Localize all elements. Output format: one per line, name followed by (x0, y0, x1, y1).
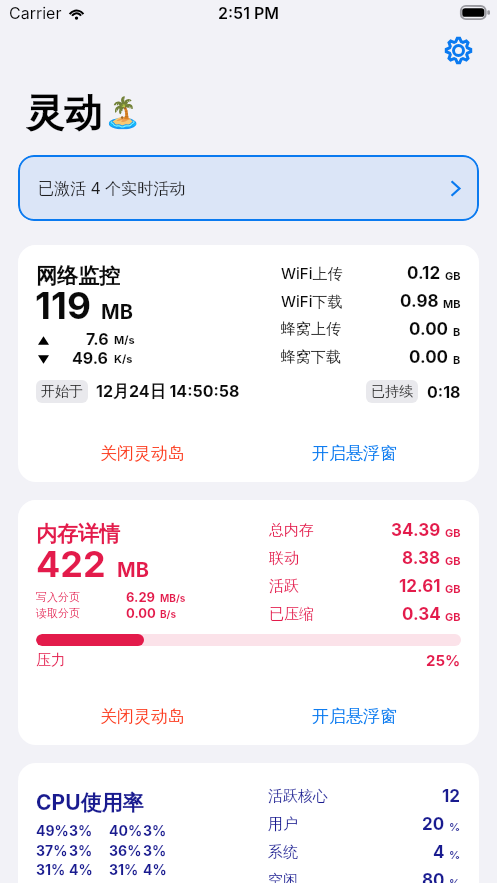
button[interactable]: 关闭灵动岛 (36, 687, 248, 745)
staticText: B (453, 353, 461, 366)
staticText: 3% (143, 842, 167, 859)
staticText: 🏝 (104, 95, 142, 130)
staticText: 已压缩 (269, 605, 314, 624)
staticText: 0:18 (427, 382, 461, 401)
staticText: 12 (442, 786, 461, 807)
staticText: B/s (160, 608, 177, 620)
staticText: 3% (69, 822, 93, 839)
staticText: 8.38 (402, 548, 441, 569)
staticText: 49% (36, 822, 69, 839)
staticText: 开始于 (41, 383, 83, 401)
staticText: 联动 (269, 549, 299, 568)
staticText: 0.12 (407, 263, 441, 284)
staticText: 31% (109, 861, 139, 878)
staticText: 蜂窝上传 (281, 320, 341, 339)
staticText: GB (445, 554, 461, 567)
staticText: MB (443, 297, 461, 310)
staticText: 31% (36, 861, 66, 878)
staticText: WiFi下载 (281, 292, 343, 311)
staticText: % (449, 820, 461, 833)
staticText: 4% (143, 861, 167, 878)
staticText: GB (445, 269, 461, 282)
staticText: 6.29 (126, 589, 156, 605)
staticText: GB (445, 526, 461, 539)
staticText: 3% (69, 842, 93, 859)
staticText: 写入分页 (36, 590, 80, 604)
staticText: 49.6 (72, 348, 109, 367)
button[interactable]: Settings (441, 33, 475, 67)
staticText: 开启悬浮窗 (312, 443, 397, 464)
button[interactable]: 开启悬浮窗 (248, 424, 461, 482)
staticText: GB (445, 610, 461, 623)
staticText: 0.00 (409, 319, 449, 340)
staticText: 蜂窝下载 (281, 348, 341, 367)
staticText: K/s (114, 352, 133, 365)
staticText: 80 (422, 870, 445, 883)
staticText: 4% (69, 861, 93, 878)
button[interactable]: 开启悬浮窗 (248, 687, 461, 745)
staticText: 119 (35, 283, 91, 328)
staticText: 读取分页 (36, 606, 80, 620)
staticText: 灵动 (26, 89, 102, 135)
staticText: 总内存 (269, 521, 314, 540)
staticText: 开启悬浮窗 (312, 706, 397, 727)
staticText: MB (117, 558, 149, 582)
staticText: 7.6 (86, 329, 109, 348)
staticText: 36% (109, 842, 142, 859)
staticText: 已持续 (371, 383, 413, 401)
staticText: 系统 (268, 843, 298, 862)
staticText: 2:51 PM (218, 3, 280, 22)
staticText: 关闭灵动岛 (100, 706, 185, 727)
staticText: 内存详情 (36, 521, 120, 547)
staticText: CPU使用率 (36, 790, 144, 816)
staticText: 34.39 (391, 520, 441, 541)
staticText: WiFi上传 (281, 264, 343, 283)
staticText: % (449, 876, 461, 883)
staticText: 网络监控 (36, 263, 120, 289)
staticText: 已激活 4 个实时活动 (38, 178, 186, 198)
staticText: M/s (114, 333, 135, 346)
staticText: 12月24日 14:50:58 (96, 381, 240, 401)
staticText: 0.00 (409, 347, 449, 368)
staticText: 0.34 (402, 604, 441, 625)
staticText: 用户 (268, 815, 298, 834)
staticText: 12.61 (399, 576, 441, 597)
button[interactable]: 已激活 4 个实时活动 (18, 155, 479, 221)
staticText: Carrier (9, 3, 62, 22)
button[interactable]: 关闭灵动岛 (36, 424, 248, 482)
staticText: MB (101, 300, 133, 324)
staticText: 40% (109, 822, 143, 839)
staticText: MB/s (160, 592, 186, 604)
staticText: 压力 (36, 651, 66, 670)
staticText: 空闲 (268, 871, 298, 883)
staticText: 0.98 (400, 291, 439, 312)
staticText: B (453, 325, 461, 338)
staticText: GB (445, 582, 461, 595)
staticText: 20 (422, 814, 445, 835)
staticText: 37% (36, 842, 68, 859)
staticText: 422 (36, 542, 106, 586)
staticText: 活跃核心 (268, 787, 328, 806)
staticText: 4 (433, 842, 445, 863)
staticText: 活跃 (269, 577, 299, 596)
staticText: 0.00 (126, 605, 156, 621)
staticText: 关闭灵动岛 (100, 443, 185, 464)
staticText: 3% (143, 822, 167, 839)
staticText: % (449, 848, 461, 861)
staticText: 25% (426, 651, 461, 669)
